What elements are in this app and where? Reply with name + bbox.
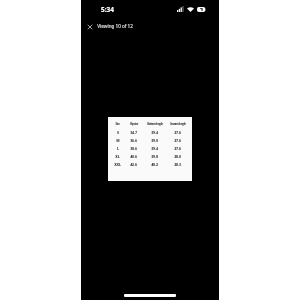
staticText: Viewing 10 of 12 bbox=[97, 23, 133, 29]
staticText: 28.0 bbox=[174, 154, 181, 159]
staticText: XXL bbox=[114, 162, 121, 167]
staticText: 39.4 bbox=[151, 146, 158, 151]
staticText: XL bbox=[115, 154, 120, 159]
button[interactable]: M bbox=[111, 136, 189, 144]
button[interactable]: Viewing 10 of 12 bbox=[97, 20, 133, 32]
button[interactable]: XXL bbox=[111, 160, 189, 168]
staticText: M bbox=[116, 138, 120, 143]
staticText: 38.6 bbox=[130, 146, 137, 151]
staticText: 39.4 bbox=[151, 130, 158, 135]
staticText: 42.6 bbox=[130, 162, 137, 167]
button[interactable]: S bbox=[111, 128, 189, 136]
staticText: Bottom length bbox=[147, 122, 163, 126]
staticText: 27.6 bbox=[174, 138, 181, 143]
button[interactable]: L bbox=[111, 144, 189, 152]
staticText: 28.3 bbox=[174, 162, 181, 167]
staticText: 40.2 bbox=[151, 162, 158, 167]
staticText: 39.8 bbox=[151, 154, 158, 159]
staticText: 36.6 bbox=[130, 138, 137, 143]
staticText: L bbox=[117, 146, 119, 151]
staticText: Size bbox=[115, 122, 120, 126]
staticText: 5:34 bbox=[101, 5, 114, 14]
staticText: S bbox=[117, 130, 119, 135]
staticText: Hip size bbox=[130, 122, 138, 126]
staticText: 40.6 bbox=[130, 154, 137, 159]
staticText: 27.6 bbox=[174, 130, 181, 135]
button[interactable]: Close bbox=[85, 22, 94, 31]
staticText: 34.7 bbox=[130, 130, 137, 135]
staticText: 27.6 bbox=[174, 146, 181, 151]
button[interactable]: XL bbox=[111, 152, 189, 160]
staticText: 39.0 bbox=[151, 138, 158, 143]
staticText: Inseam length bbox=[170, 122, 186, 126]
